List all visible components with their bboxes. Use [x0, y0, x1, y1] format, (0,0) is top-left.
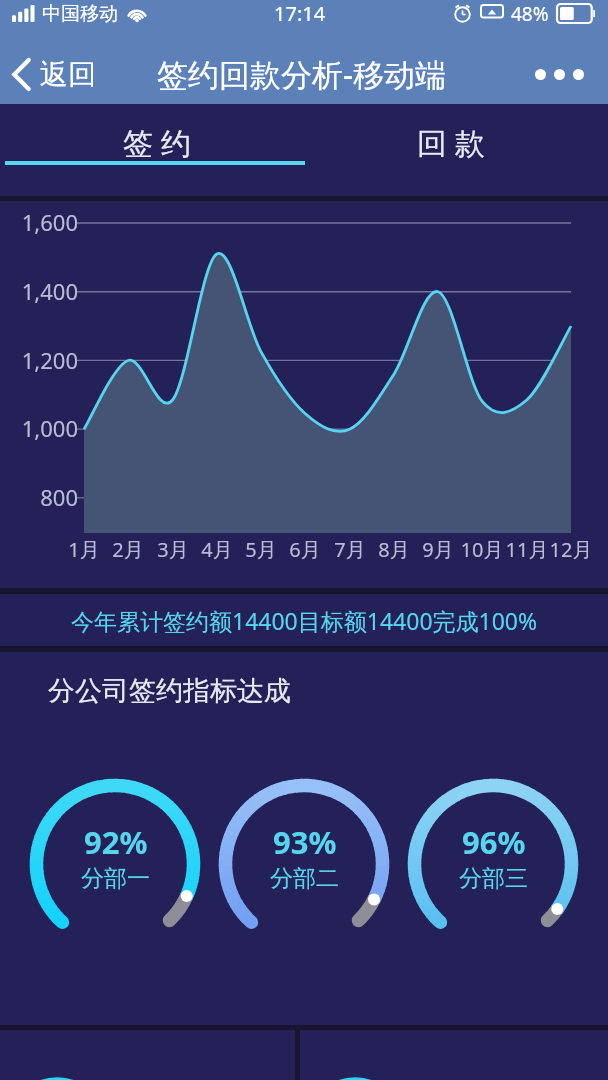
staticText: 6月	[265, 536, 345, 563]
staticText: 分部二	[270, 864, 339, 893]
button[interactable]: 回 款	[304, 104, 608, 196]
staticText: 5月	[221, 536, 301, 563]
staticText: 4月	[177, 536, 257, 563]
staticText: 17:14	[274, 0, 326, 27]
staticText: 签约回款分析-移动端	[157, 53, 446, 95]
staticText: 分部三	[459, 864, 528, 893]
staticText: 1,400	[0, 276, 78, 306]
staticText: 分公司签约指标达成	[48, 674, 291, 708]
staticText: 9月	[398, 536, 478, 563]
staticText: 8月	[354, 536, 434, 563]
staticText: 回 款	[417, 122, 485, 163]
button[interactable]: 签 约	[0, 104, 304, 196]
button[interactable]: 92%	[20, 769, 210, 959]
staticText: 800	[0, 482, 78, 512]
staticText: 1,600	[0, 207, 78, 237]
button[interactable]	[300, 1030, 608, 1080]
staticText: 分部一	[81, 864, 150, 893]
staticText: 92%	[84, 821, 148, 863]
staticText: 1,200	[0, 345, 78, 375]
staticText: 2月	[88, 536, 168, 563]
staticText: 12月	[531, 536, 608, 563]
button[interactable]	[0, 1030, 295, 1080]
button[interactable]: More options	[525, 55, 608, 94]
staticText: 11月	[487, 536, 567, 563]
staticText: 1月	[44, 536, 124, 563]
staticText: 3月	[133, 536, 213, 563]
button[interactable]: 93%	[209, 769, 399, 959]
staticText: 96%	[462, 821, 526, 863]
staticText: 返回	[40, 57, 96, 92]
staticText: 签 约	[123, 122, 191, 163]
staticText: 今年累计签约额14400目标额14400完成100%	[71, 605, 538, 636]
staticText: 1,000	[0, 413, 78, 443]
staticText: 中国移动	[42, 2, 118, 26]
staticText: 10月	[442, 536, 522, 563]
staticText: 7月	[310, 536, 390, 563]
staticText: 48%	[511, 1, 549, 27]
button[interactable]: 96%	[398, 769, 588, 959]
button[interactable]: 返回	[0, 52, 106, 97]
staticText: 93%	[273, 821, 337, 863]
